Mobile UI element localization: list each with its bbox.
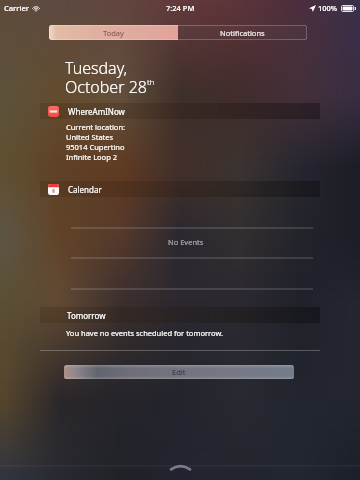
- button[interactable]: Close notification center: [0, 462, 360, 480]
- staticText: th: [147, 76, 155, 87]
- staticText: United States: [66, 132, 114, 142]
- button[interactable]: Notifications: [178, 25, 307, 40]
- staticText: WhereAmINow: [68, 106, 125, 117]
- staticText: Today: [103, 28, 124, 38]
- button[interactable]: Tomorrow: [40, 307, 320, 323]
- button[interactable]: WhereAmINow: [40, 103, 320, 119]
- staticText: 95014 Cupertino: [66, 142, 125, 152]
- staticText: October 28: [65, 76, 147, 98]
- staticText: Calendar: [68, 184, 102, 195]
- staticText: Carrier: [4, 3, 29, 13]
- staticText: 100%: [318, 3, 338, 13]
- staticText: Infinite Loop 2: [66, 152, 118, 162]
- staticText: Tuesday,: [65, 57, 128, 79]
- staticText: Tomorrow: [67, 310, 106, 321]
- staticText: Edit: [172, 367, 186, 377]
- staticText: Notifications: [220, 28, 265, 38]
- button[interactable]: Edit: [64, 365, 294, 379]
- staticText: Current location:: [66, 122, 126, 132]
- button[interactable]: Calendar: [40, 181, 320, 197]
- staticText: You have no events scheduled for tomorro…: [66, 328, 223, 338]
- button[interactable]: Today: [49, 25, 178, 40]
- staticText: No Events: [168, 237, 204, 247]
- staticText: 7:24 PM: [166, 3, 195, 13]
